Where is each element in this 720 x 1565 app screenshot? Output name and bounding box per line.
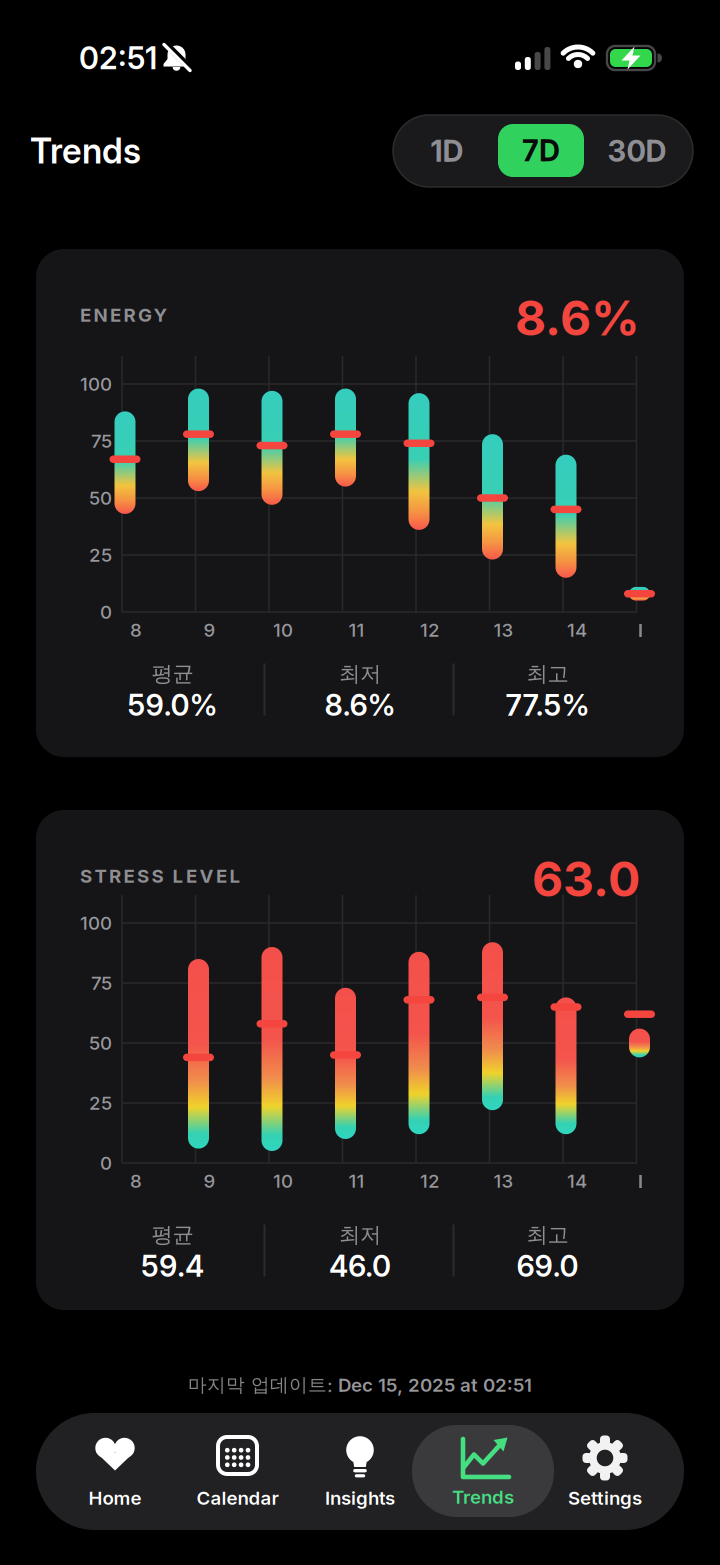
staticText: 8 xyxy=(130,1170,142,1192)
staticText: 14 xyxy=(567,619,587,641)
staticText: 75 xyxy=(91,430,112,452)
staticText: 8.6% xyxy=(324,688,395,722)
staticText: 8.6% xyxy=(515,290,640,346)
staticText: 12 xyxy=(420,619,440,641)
staticText: 50 xyxy=(89,487,112,509)
staticText: 0 xyxy=(100,601,112,623)
button[interactable]: 7D xyxy=(498,124,584,177)
staticText: 75 xyxy=(91,972,112,994)
staticText: 평균 xyxy=(151,1222,193,1248)
button[interactable]: Calendar xyxy=(177,1418,297,1526)
button[interactable]: Home xyxy=(55,1418,175,1526)
staticText: 63.0 xyxy=(532,851,640,907)
staticText: Trends xyxy=(30,131,141,171)
button[interactable]: 30D xyxy=(591,119,683,183)
staticText: 50 xyxy=(89,1032,112,1054)
staticText: 13 xyxy=(493,619,513,641)
staticText: 30D xyxy=(607,134,666,168)
staticText: STRESS LEVEL xyxy=(80,865,240,887)
staticText: 평균 xyxy=(151,661,193,687)
staticText: Calendar xyxy=(196,1487,278,1509)
staticText: 최고 xyxy=(526,1222,568,1248)
staticText: 77.5% xyxy=(505,688,589,722)
staticText: 마지막 업데이트: xyxy=(188,1373,338,1396)
staticText: 최고 xyxy=(526,661,568,687)
staticText: 59.4 xyxy=(141,1249,204,1283)
staticText: Dec 15, 2025 at 02:51 xyxy=(338,1374,532,1396)
staticText: 10 xyxy=(273,619,293,641)
staticText: 02:51 xyxy=(79,40,157,76)
button[interactable]: Insights xyxy=(300,1418,420,1526)
staticText: 69.0 xyxy=(516,1249,578,1283)
staticText: 12 xyxy=(420,1170,440,1192)
staticText: Trends xyxy=(452,1486,514,1508)
staticText: 25 xyxy=(89,1092,112,1114)
staticText: 9 xyxy=(203,619,215,641)
staticText: 13 xyxy=(493,1170,513,1192)
staticText: 11 xyxy=(348,619,364,641)
staticText: 59.0% xyxy=(127,688,217,722)
staticText: 25 xyxy=(89,544,112,566)
staticText: 1D xyxy=(430,134,463,168)
staticText: 7D xyxy=(522,133,560,168)
button[interactable]: Trends xyxy=(412,1421,554,1521)
staticText: 10 xyxy=(273,1170,293,1192)
button[interactable]: Settings xyxy=(545,1418,665,1526)
staticText: 14 xyxy=(567,1170,587,1192)
staticText: 100 xyxy=(80,373,112,395)
staticText: Home xyxy=(88,1487,141,1509)
staticText: 8 xyxy=(130,619,142,641)
staticText: ENERGY xyxy=(80,304,167,326)
staticText: 최저 xyxy=(339,661,381,687)
staticText: Insights xyxy=(325,1487,395,1509)
staticText: 11 xyxy=(348,1170,364,1192)
staticText: 100 xyxy=(80,912,112,934)
staticText: 9 xyxy=(203,1170,215,1192)
staticText: 46.0 xyxy=(329,1249,391,1283)
button[interactable]: 1D xyxy=(401,119,493,183)
staticText: 최저 xyxy=(339,1222,381,1248)
staticText: 0 xyxy=(100,1152,112,1174)
staticText: Settings xyxy=(568,1487,642,1509)
